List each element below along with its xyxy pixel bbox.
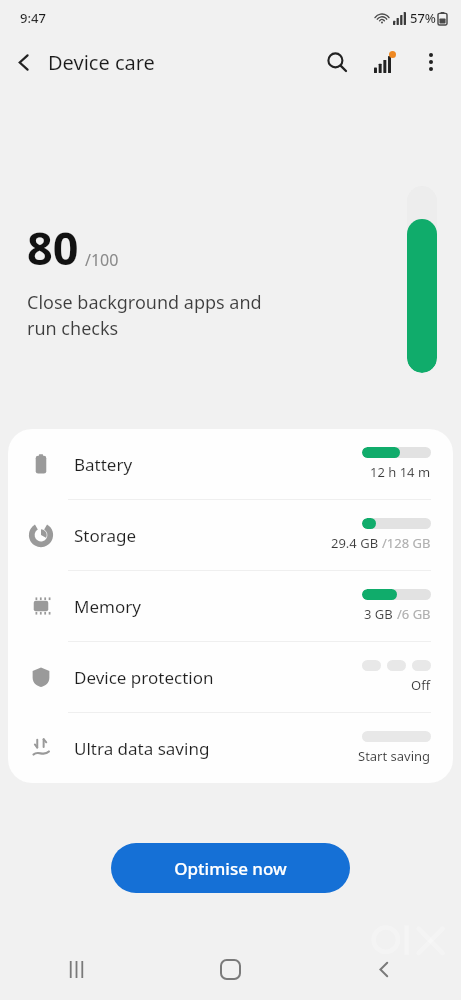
- staticText: 3 GB: [364, 605, 397, 623]
- staticText: 12 h 14 m: [370, 463, 431, 481]
- button[interactable]: Optimise now: [111, 843, 350, 893]
- staticText: 57%: [410, 9, 436, 27]
- button[interactable]: Storage: [8, 500, 453, 570]
- button[interactable]: Battery: [8, 429, 453, 499]
- staticText: Memory: [74, 595, 362, 618]
- staticText: Start saving: [358, 747, 431, 765]
- staticText: /100: [85, 249, 119, 271]
- staticText: Close background apps and run checks: [27, 290, 262, 341]
- staticText: 9:47: [20, 9, 46, 27]
- button[interactable]: Usage stats: [361, 38, 409, 86]
- button[interactable]: Home: [153, 938, 307, 1000]
- staticText: Off: [411, 676, 431, 694]
- button[interactable]: More options: [409, 40, 453, 84]
- button[interactable]: Ultra data saving: [8, 713, 453, 783]
- staticText: /6 GB: [397, 605, 431, 623]
- staticText: Optimise now: [174, 857, 287, 880]
- button[interactable]: Back: [0, 38, 48, 86]
- button[interactable]: Search: [313, 38, 361, 86]
- button[interactable]: Back: [307, 938, 461, 1000]
- button[interactable]: Memory: [8, 571, 453, 641]
- button[interactable]: Device protection: [8, 642, 453, 712]
- staticText: Ultra data saving: [74, 737, 358, 760]
- staticText: /128 GB: [382, 534, 431, 552]
- staticText: 29.4 GB: [331, 534, 382, 552]
- staticText: Storage: [74, 524, 331, 547]
- staticText: Battery: [74, 453, 362, 476]
- staticText: Device care: [48, 49, 155, 76]
- staticText: 80: [27, 217, 79, 278]
- staticText: Device protection: [74, 666, 362, 689]
- button[interactable]: Recent apps: [0, 938, 153, 1000]
